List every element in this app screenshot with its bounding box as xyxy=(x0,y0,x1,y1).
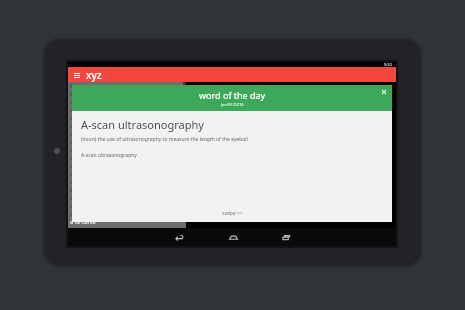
staticText: a xyxy=(70,114,74,122)
button[interactable]: a xyxy=(68,106,186,114)
staticText: a xyxy=(70,194,74,202)
button[interactable]: a xyxy=(68,170,186,178)
staticText: word of the day xyxy=(199,89,266,101)
button[interactable]: a xyxy=(68,146,186,154)
staticText: A xyxy=(70,82,74,90)
staticText: a xyxy=(70,106,74,114)
staticText: A xyxy=(70,90,74,98)
staticText: a xyxy=(70,146,74,154)
button[interactable]: A xyxy=(68,90,186,98)
staticText: a xyxy=(70,130,74,138)
button[interactable]: Close xyxy=(379,87,389,97)
button[interactable]: a xyxy=(68,98,186,106)
staticText: A-scan ultrasonography xyxy=(81,117,204,132)
staticText: 9:32 xyxy=(384,62,392,67)
staticText: a xyxy=(70,138,74,146)
button[interactable]: a xyxy=(68,194,186,202)
staticText: a la carte xyxy=(70,218,96,226)
button[interactable]: Recent apps xyxy=(277,228,295,246)
staticText: a xyxy=(70,170,74,178)
button[interactable]: a xyxy=(68,130,186,138)
button[interactable]: swipe >> xyxy=(222,210,243,217)
staticText: a xyxy=(70,154,74,162)
button[interactable]: a xyxy=(68,202,186,210)
button[interactable]: Home xyxy=(224,228,242,246)
staticText: A xyxy=(70,186,74,194)
staticText: (noun) the use of ultrasonography to mea… xyxy=(81,136,248,143)
button[interactable]: a xyxy=(68,138,186,146)
staticText: a xyxy=(70,202,74,210)
staticText: a xyxy=(70,162,74,170)
button[interactable]: A xyxy=(68,186,186,194)
button[interactable]: a xyxy=(68,162,186,170)
button[interactable]: a xyxy=(68,154,186,162)
button[interactable]: A xyxy=(68,82,186,90)
staticText: a xyxy=(70,178,74,186)
button[interactable]: a xyxy=(68,122,186,130)
staticText: Jan/31/2016 xyxy=(221,102,244,107)
staticText: a xyxy=(70,122,74,130)
staticText: a xyxy=(70,98,74,106)
button[interactable]: a la carte xyxy=(68,218,186,226)
staticText: A-scan ultrasonography xyxy=(81,152,137,159)
button[interactable]: Open navigation drawer xyxy=(72,70,82,80)
button[interactable]: Back xyxy=(170,228,188,246)
staticText: xyz xyxy=(86,68,102,82)
button[interactable]: a xyxy=(68,210,186,218)
button[interactable]: a xyxy=(68,114,186,122)
staticText: swipe >> xyxy=(222,210,243,217)
button[interactable]: a xyxy=(68,178,186,186)
staticText: a xyxy=(70,210,74,218)
